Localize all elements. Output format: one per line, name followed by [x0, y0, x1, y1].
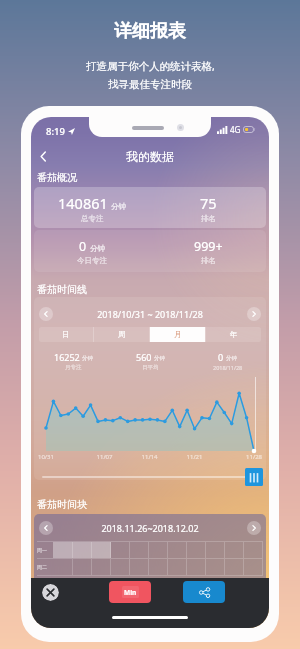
staticText: 75: [200, 193, 217, 213]
button[interactable]: 月: [150, 327, 205, 342]
staticText: 周: [118, 330, 126, 339]
staticText: 16252: [54, 351, 80, 363]
staticText: 11/07: [82, 453, 127, 461]
staticText: 分钟: [82, 355, 93, 362]
staticText: 2018/11/28: [213, 364, 243, 371]
staticText: 月专注: [65, 364, 82, 371]
button[interactable]: 周: [94, 327, 149, 342]
staticText: 140861: [58, 193, 108, 213]
button[interactable]: Min app: [109, 581, 151, 603]
staticText: 周一: [37, 547, 53, 553]
button[interactable]: Previous period: [39, 521, 53, 535]
staticText: 560: [136, 351, 152, 363]
staticText: 11/14: [127, 453, 172, 461]
staticText: 日平均: [142, 364, 159, 371]
button[interactable]: Previous period: [39, 307, 53, 321]
staticText: 8:19: [46, 125, 65, 138]
staticText: 总专注: [81, 214, 104, 223]
staticText: 分钟: [154, 355, 165, 362]
staticText: 排名: [201, 214, 216, 223]
staticText: 找寻最佳专注时段: [108, 78, 192, 91]
staticText: 年: [230, 330, 238, 339]
staticText: 999+: [194, 238, 223, 255]
staticText: 4G: [230, 124, 241, 135]
staticText: 番茄概况: [37, 171, 77, 184]
staticText: 分钟: [226, 355, 237, 362]
staticText: 排名: [201, 256, 216, 265]
button[interactable]: Share: [183, 581, 225, 603]
staticText: 番茄时间线: [37, 283, 87, 296]
button[interactable]: 年: [206, 327, 261, 342]
staticText: 2018.11.26~2018.12.02: [53, 522, 247, 534]
staticText: 2018/10/31 ~ 2018/11/28: [53, 308, 247, 320]
staticText: 月: [174, 330, 182, 339]
button[interactable]: Back: [31, 144, 55, 168]
button[interactable]: Bar chart view: [245, 468, 263, 486]
staticText: 周二: [37, 564, 53, 570]
button[interactable]: Close: [42, 584, 59, 601]
staticText: 0: [218, 351, 224, 363]
button[interactable]: 日: [39, 327, 93, 342]
button[interactable]: Next period: [247, 307, 261, 321]
staticText: 日: [62, 330, 70, 339]
staticText: Min: [124, 588, 137, 597]
staticText: 分钟: [111, 202, 126, 211]
staticText: 打造属于你个人的统计表格,: [86, 59, 215, 73]
staticText: 番茄时间块: [37, 498, 87, 511]
staticText: 10/31: [38, 453, 82, 461]
staticText: 0: [79, 238, 87, 255]
staticText: 今日专注: [77, 256, 107, 265]
staticText: 我的数据: [126, 149, 174, 164]
staticText: 分钟: [90, 244, 105, 253]
staticText: 11/21: [172, 453, 217, 461]
staticText: 11/28: [217, 453, 262, 461]
staticText: 详细报表: [114, 20, 186, 43]
button[interactable]: Next period: [247, 521, 261, 535]
